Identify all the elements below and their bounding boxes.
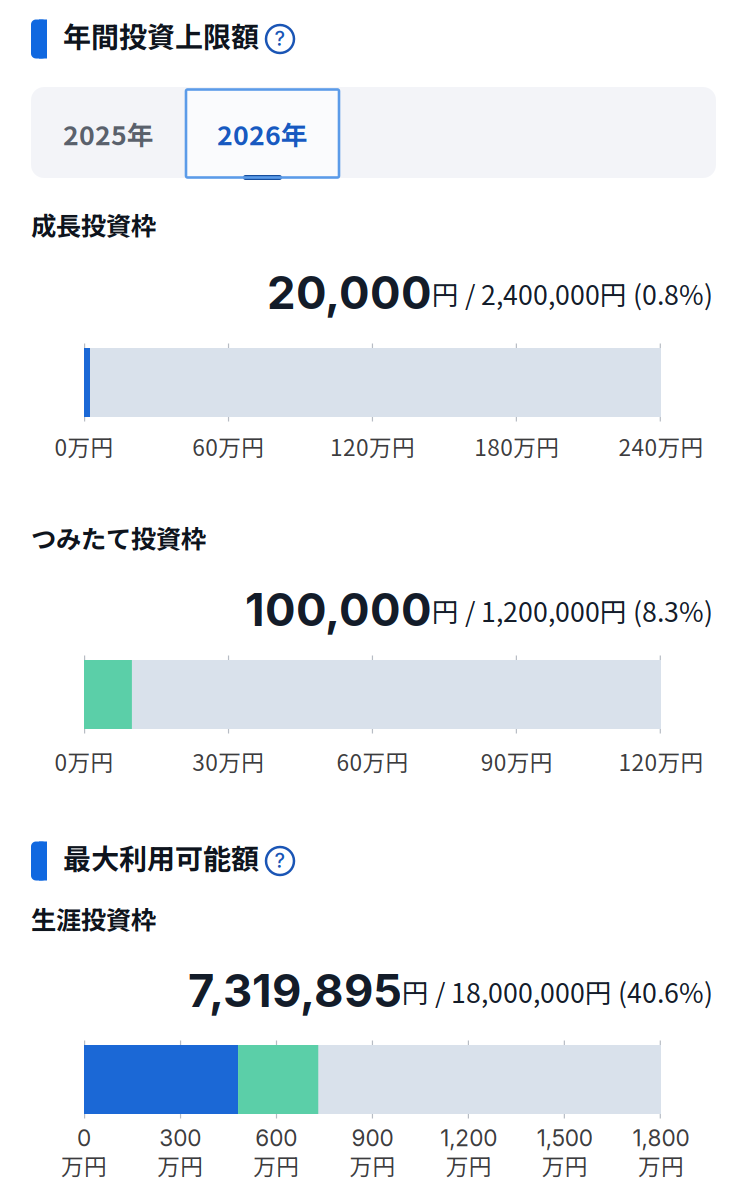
staticText: 万円 (542, 1149, 588, 1182)
staticText: つみたて投資枠 (31, 519, 206, 556)
staticText: 1,500 (537, 1124, 593, 1152)
button[interactable]: 2025年 (31, 88, 186, 179)
staticText: 成長投資枠 (31, 206, 156, 243)
staticText: 2026年 (217, 114, 308, 153)
staticText: 300 (159, 1124, 201, 1152)
staticText: 0万円 (54, 430, 113, 462)
staticText: 900 (351, 1124, 393, 1152)
staticText: 円 / 18,000,000円 (40.6%) (402, 972, 713, 1011)
staticText: 180万円 (474, 430, 559, 462)
staticText: 90万円 (481, 745, 553, 777)
staticText: 600 (255, 1124, 297, 1152)
staticText: 万円 (61, 1149, 107, 1182)
staticText: 万円 (157, 1149, 203, 1182)
staticText: 万円 (638, 1149, 684, 1182)
button[interactable]: ヘルプ (259, 20, 301, 58)
staticText: 60万円 (192, 430, 264, 462)
staticText: 万円 (446, 1149, 492, 1182)
staticText: 円 / 2,400,000円 (0.8%) (432, 274, 713, 313)
staticText: ? (274, 26, 285, 51)
staticText: 最大利用可能額 (63, 837, 259, 877)
staticText: 2025年 (63, 114, 154, 153)
staticText: 年間投資上限額 (63, 15, 259, 55)
staticText: 7,319,895 (188, 963, 402, 1018)
staticText: 60万円 (336, 745, 408, 777)
staticText: 30万円 (192, 745, 264, 777)
staticText: 円 / 1,200,000円 (8.3%) (432, 591, 713, 630)
staticText: 万円 (349, 1149, 395, 1182)
staticText: ? (274, 848, 285, 873)
staticText: 万円 (253, 1149, 299, 1182)
button[interactable]: ヘルプ (259, 842, 301, 880)
staticText: 1,800 (632, 1124, 689, 1152)
staticText: 生涯投資枠 (31, 900, 156, 937)
staticText: 20,000 (267, 265, 432, 320)
staticText: 120万円 (618, 745, 703, 777)
staticText: 0 (77, 1124, 91, 1152)
staticText: 1,200 (440, 1124, 497, 1152)
staticText: 0万円 (54, 745, 113, 777)
staticText: 240万円 (618, 430, 703, 462)
staticText: 120万円 (330, 430, 415, 462)
staticText: 100,000 (245, 582, 432, 637)
button[interactable]: 2026年 (186, 89, 339, 177)
